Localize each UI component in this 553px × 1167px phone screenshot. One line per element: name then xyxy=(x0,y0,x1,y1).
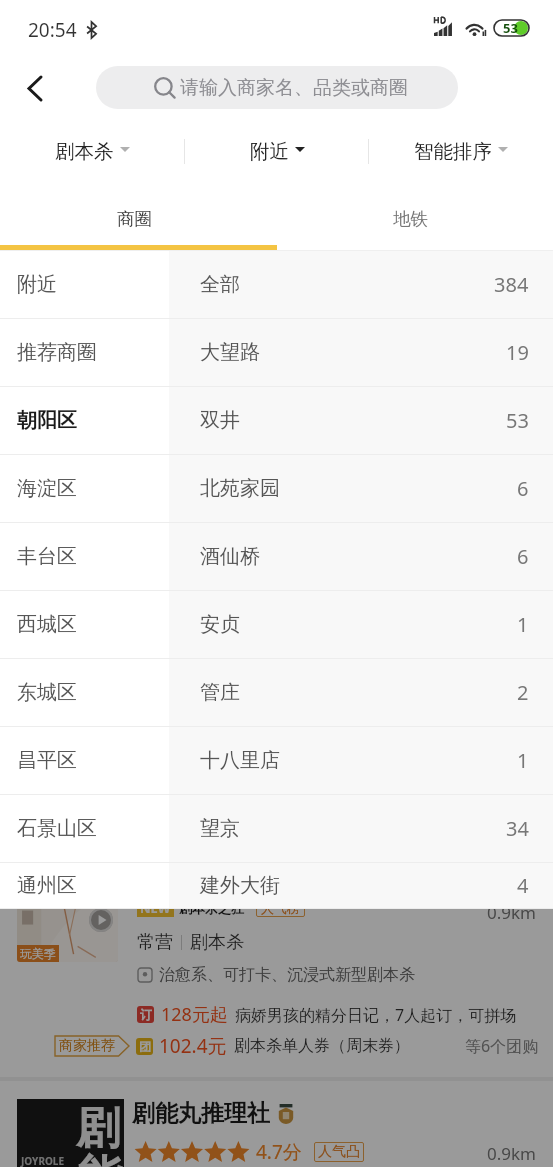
staticText: 53 xyxy=(506,407,529,434)
button[interactable]: 双井 xyxy=(169,387,553,455)
staticText: 团 xyxy=(139,1039,151,1054)
staticText: 海淀区 xyxy=(17,476,77,501)
staticText: 订 xyxy=(140,1007,152,1022)
staticText: 20:54 xyxy=(28,17,77,43)
staticText: 剧 xyxy=(76,1101,120,1156)
staticText: 常营 xyxy=(137,931,173,954)
staticText: 朝阳区 xyxy=(17,408,77,433)
staticText: 大望路 xyxy=(200,340,260,365)
staticText: 商圈 xyxy=(117,208,152,230)
staticText: 病娇男孩的精分日记，7人起订，可拼场 xyxy=(235,1004,517,1026)
staticText: 53 xyxy=(503,19,518,37)
button[interactable]: 北苑家园 xyxy=(169,455,553,523)
staticText: 酒仙桥 xyxy=(200,544,260,569)
staticText: 望京 xyxy=(200,816,240,841)
button[interactable]: 全部 xyxy=(169,251,553,319)
button[interactable]: 十八里店 xyxy=(169,727,553,795)
staticText: 建外大街 xyxy=(200,873,280,898)
button[interactable]: 建外大街 xyxy=(169,863,553,909)
staticText: 昌平区 xyxy=(17,748,77,773)
button[interactable]: 管庄 xyxy=(169,659,553,727)
button[interactable]: 附近 xyxy=(0,251,169,319)
button[interactable]: 附近 xyxy=(185,125,369,178)
button[interactable]: 昌平区 xyxy=(0,727,169,795)
staticText: 0.9km xyxy=(487,1142,536,1165)
staticText: 4.7分 xyxy=(256,1139,302,1165)
button[interactable]: 西城区 xyxy=(0,591,169,659)
staticText: 管庄 xyxy=(200,680,240,705)
staticText: 请输入商家名、品类或商圈 xyxy=(180,76,408,100)
staticText: 剧本杀之狂 xyxy=(179,900,244,916)
staticText: 北苑家园 xyxy=(200,476,280,501)
staticText: 剧能丸推理社 xyxy=(132,1099,270,1128)
button[interactable]: 海淀区 xyxy=(0,455,169,523)
button[interactable]: 商圈 xyxy=(0,178,276,251)
button[interactable]: 酒仙桥 xyxy=(169,523,553,591)
button[interactable]: 石景山区 xyxy=(0,795,169,863)
staticText: 剧本杀单人券（周末券） xyxy=(234,1036,410,1056)
button[interactable]: 剧本杀 xyxy=(0,125,185,178)
staticText: 商家推荐 xyxy=(59,1037,115,1055)
staticText: 附近 xyxy=(250,139,289,164)
button[interactable]: 推荐商圈 xyxy=(0,319,169,387)
staticText: 推荐商圈 xyxy=(17,340,97,365)
button[interactable]: 通州区 xyxy=(0,863,169,909)
button[interactable]: 朝阳区 xyxy=(0,387,169,455)
staticText: 2 xyxy=(517,679,529,706)
staticText: 102.4元 xyxy=(159,1033,227,1059)
staticText: 西城区 xyxy=(17,612,77,637)
staticText: 能 xyxy=(78,1149,122,1167)
staticText: 东城区 xyxy=(17,680,77,705)
staticText: 人气榜 xyxy=(261,900,300,916)
staticText: 19 xyxy=(506,339,529,366)
staticText: 石景山区 xyxy=(17,816,97,841)
button[interactable]: 丰台区 xyxy=(0,523,169,591)
staticText: 128元起 xyxy=(161,1002,228,1027)
staticText: 1 xyxy=(517,747,529,774)
staticText: 0.9km xyxy=(487,901,536,924)
staticText: 治愈系、可打卡、沉浸式新型剧本杀 xyxy=(159,965,415,985)
staticText: 1 xyxy=(517,611,529,638)
button[interactable]: 地铁 xyxy=(276,178,553,251)
button[interactable]: 大望路 xyxy=(169,319,553,387)
staticText: 通州区 xyxy=(17,873,77,898)
staticText: NEW xyxy=(140,899,171,917)
staticText: 等6个团购 xyxy=(465,1035,539,1057)
staticText: 剧本杀 xyxy=(190,931,244,954)
staticText: 安贞 xyxy=(200,612,240,637)
staticText: 十八里店 xyxy=(200,748,280,773)
button[interactable]: 安贞 xyxy=(169,591,553,659)
staticText: 附近 xyxy=(17,272,57,297)
button[interactable]: 请输入商家名、品类或商圈 xyxy=(96,66,458,109)
button[interactable]: 东城区 xyxy=(0,659,169,727)
button[interactable]: 智能排序 xyxy=(369,125,553,178)
staticText: 人气凸 xyxy=(318,1143,360,1161)
staticText: JOYROLE xyxy=(21,1154,65,1167)
staticText: 玩美季 xyxy=(20,946,56,961)
staticText: 剧本杀 xyxy=(55,139,114,164)
staticText: 384 xyxy=(494,271,529,298)
staticText: 34 xyxy=(506,815,529,842)
staticText: 4 xyxy=(517,872,529,899)
staticText: 智能排序 xyxy=(414,139,492,164)
staticText: 丰台区 xyxy=(17,544,77,569)
staticText: 地铁 xyxy=(393,208,428,230)
staticText: 6 xyxy=(517,475,529,502)
staticText: 全部 xyxy=(200,272,240,297)
staticText: 双井 xyxy=(200,408,240,433)
button[interactable]: Back xyxy=(10,64,58,112)
button[interactable]: 望京 xyxy=(169,795,553,863)
staticText: 6 xyxy=(517,543,529,570)
